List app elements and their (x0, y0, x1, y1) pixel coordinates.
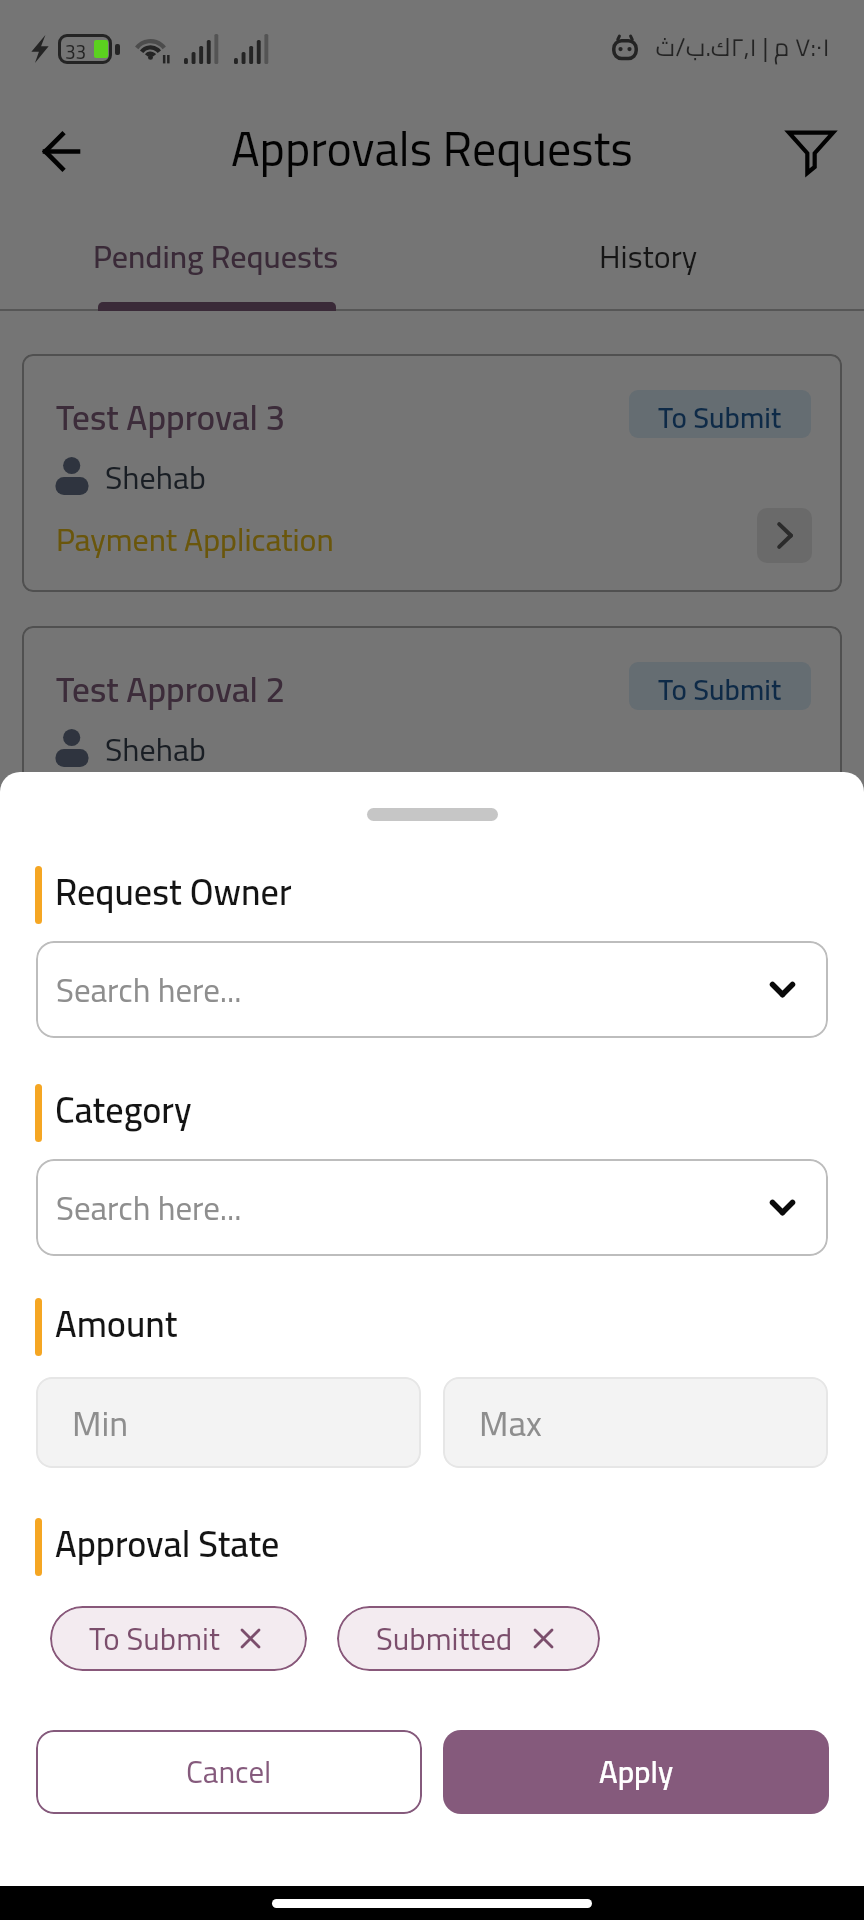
button[interactable]: Filter (780, 120, 842, 182)
button[interactable]: Search here... (36, 941, 828, 1038)
button[interactable]: To Submit (50, 1606, 307, 1671)
staticText: Cancel (186, 1743, 272, 1801)
button[interactable]: Pending Requests (0, 210, 432, 302)
staticText: Category (55, 1076, 192, 1143)
button[interactable]: Min (36, 1377, 421, 1468)
button[interactable]: Back (30, 120, 92, 182)
staticText: Shehab (105, 719, 206, 779)
staticText: ٧:٠١ م | ٢,١ك.ب/ث (655, 23, 830, 70)
button[interactable]: Open request (757, 508, 812, 563)
button[interactable]: Submitted (337, 1606, 600, 1671)
staticText: Request Owner (55, 858, 292, 925)
staticText: Test Approval 2 (56, 656, 286, 722)
staticText: Apply (599, 1743, 674, 1801)
button[interactable]: Test Approval 3 (22, 354, 842, 592)
button[interactable]: Search here... (36, 1159, 828, 1256)
button[interactable]: Test Approval 2 (22, 626, 842, 864)
button[interactable]: Apply (443, 1730, 829, 1814)
staticText: 33 (65, 34, 87, 64)
staticText: To Submit (89, 1610, 220, 1668)
staticText: Max (479, 1390, 542, 1456)
staticText: To Submit (658, 662, 782, 710)
staticText: Min (72, 1390, 129, 1456)
staticText: Approvals Requests (231, 103, 633, 193)
staticText: Test Approval 3 (56, 384, 286, 450)
staticText: Amount (55, 1290, 178, 1357)
staticText: To Submit (658, 390, 782, 438)
button[interactable]: Max (443, 1377, 828, 1468)
staticText: History (599, 226, 698, 286)
button[interactable]: History (432, 210, 864, 302)
button[interactable]: Cancel (36, 1730, 422, 1814)
staticText: Submitted (376, 1610, 513, 1668)
staticText: Shehab (105, 447, 206, 507)
staticText: Pending Requests (93, 226, 339, 286)
staticText: Approval State (55, 1510, 280, 1577)
staticText: Payment Application (56, 509, 334, 569)
staticText: Search here... (56, 959, 242, 1021)
staticText: Search here... (56, 1177, 242, 1239)
